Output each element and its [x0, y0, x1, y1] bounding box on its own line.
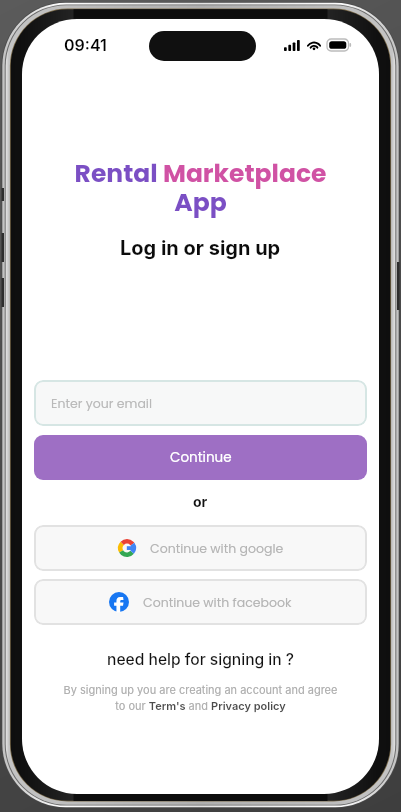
staticText: Enter your email — [51, 395, 152, 412]
staticText: By signing up you are creating an accoun… — [36, 683, 365, 712]
staticText: Continue with facebook — [143, 594, 292, 611]
button[interactable]: need help for signing in ? — [107, 650, 295, 669]
staticText: Log in or sign up — [120, 236, 281, 260]
staticText: Continue with google — [150, 540, 284, 557]
staticText: 09:41 — [64, 35, 107, 54]
button[interactable]: Continue with google — [34, 525, 367, 571]
staticText: or — [193, 493, 208, 510]
staticText: Rental Marketplace App — [48, 156, 353, 219]
button[interactable]: Enter your email — [34, 380, 367, 426]
button[interactable]: Continue with facebook — [34, 579, 367, 625]
button[interactable]: Continue — [34, 435, 367, 480]
staticText: Continue — [170, 448, 232, 467]
